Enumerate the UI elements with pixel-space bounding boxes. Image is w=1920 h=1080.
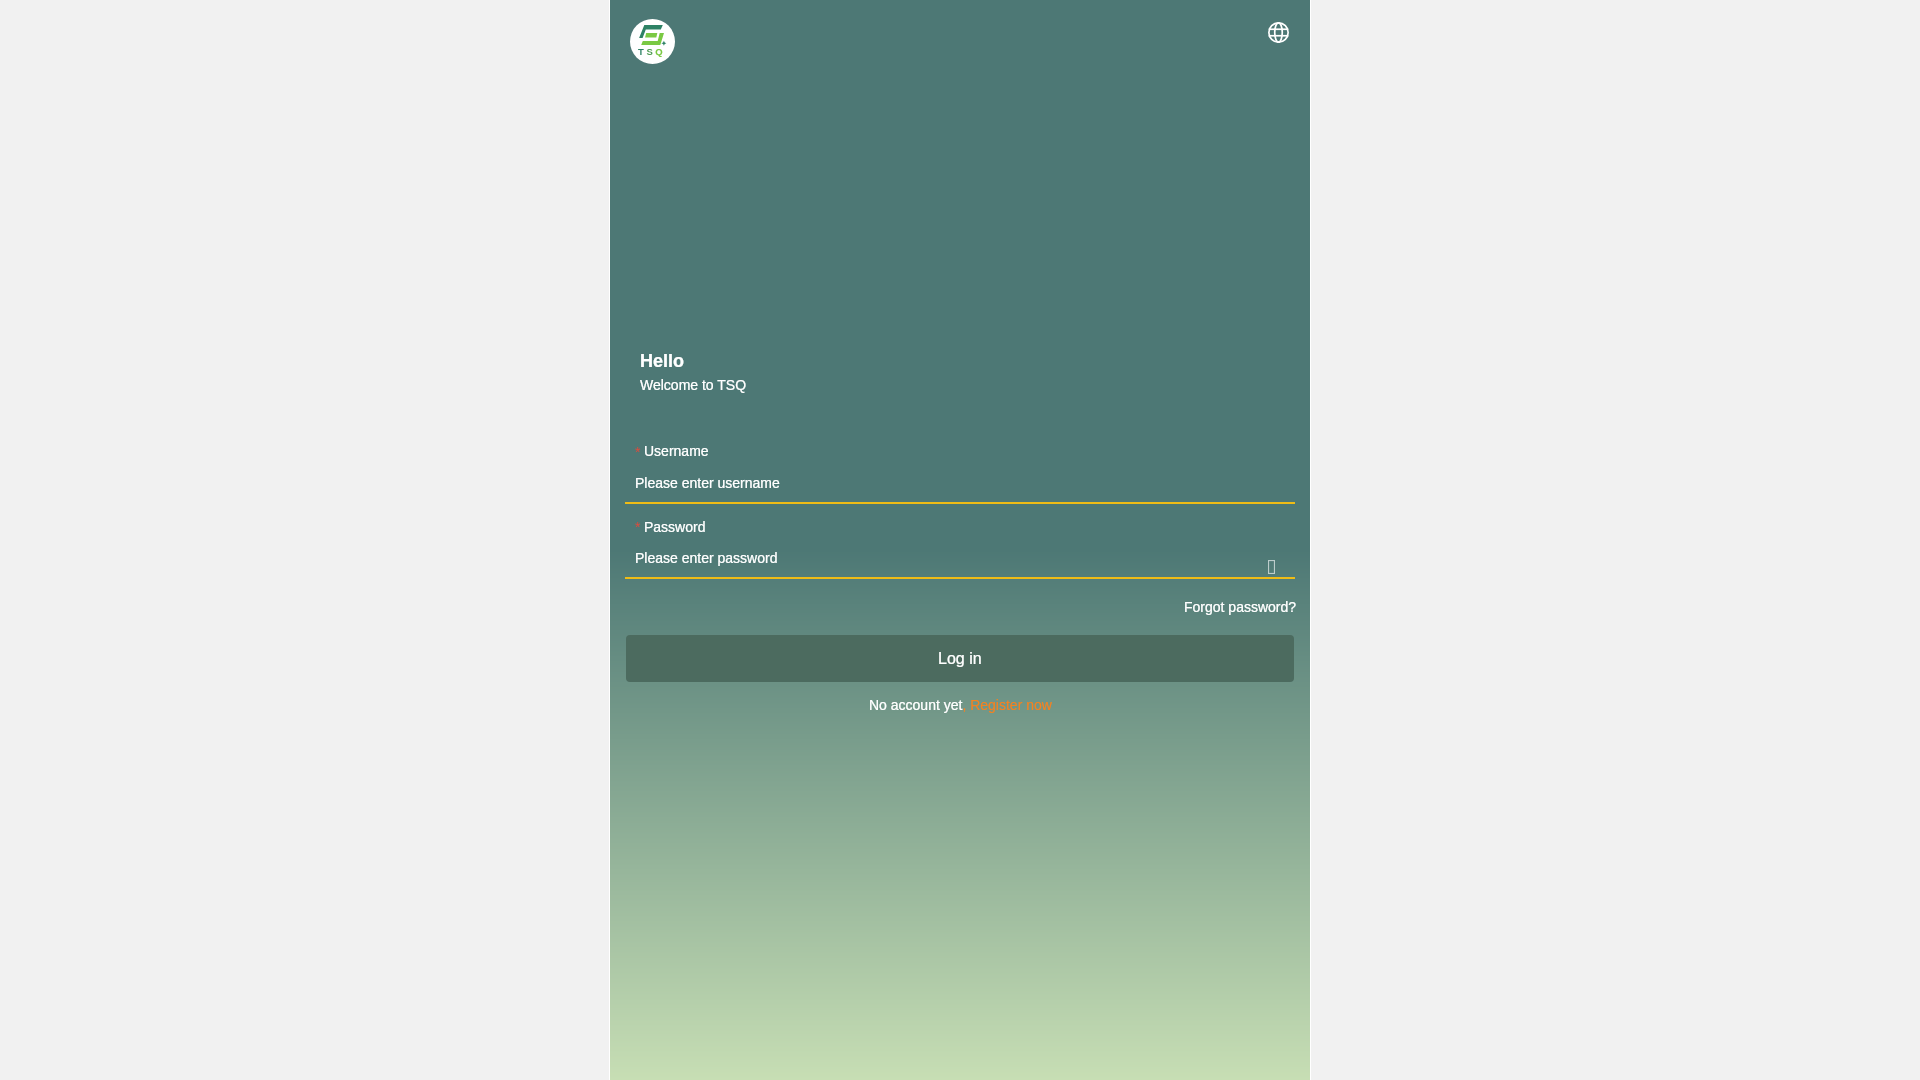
staticText: Please enter username <box>635 475 780 491</box>
button[interactable]: Password input <box>625 543 1295 579</box>
button[interactable]: TSQ logo <box>630 19 675 64</box>
staticText: * <box>635 519 641 535</box>
staticText: Please enter password <box>635 550 778 566</box>
staticText: Log in <box>938 650 982 668</box>
staticText: Hello <box>640 351 685 371</box>
button[interactable]: Change language <box>1264 18 1292 46</box>
staticText: Username <box>644 443 709 459</box>
staticText: Welcome to TSQ <box>640 377 747 393</box>
button[interactable]: Show password <box>1260 556 1282 578</box>
staticText: TSQ <box>638 46 666 57</box>
staticText: No account yet, Register now <box>869 697 1052 713</box>
button[interactable]: Username input <box>625 468 1295 504</box>
button[interactable]: Forgot password? <box>1182 593 1297 621</box>
button[interactable]: Log in <box>626 635 1294 682</box>
staticText: Forgot password? <box>1184 599 1297 615</box>
staticText: Password <box>644 519 706 535</box>
staticText: * <box>635 444 641 460</box>
button[interactable]: No account yet, Register now <box>860 691 1060 719</box>
